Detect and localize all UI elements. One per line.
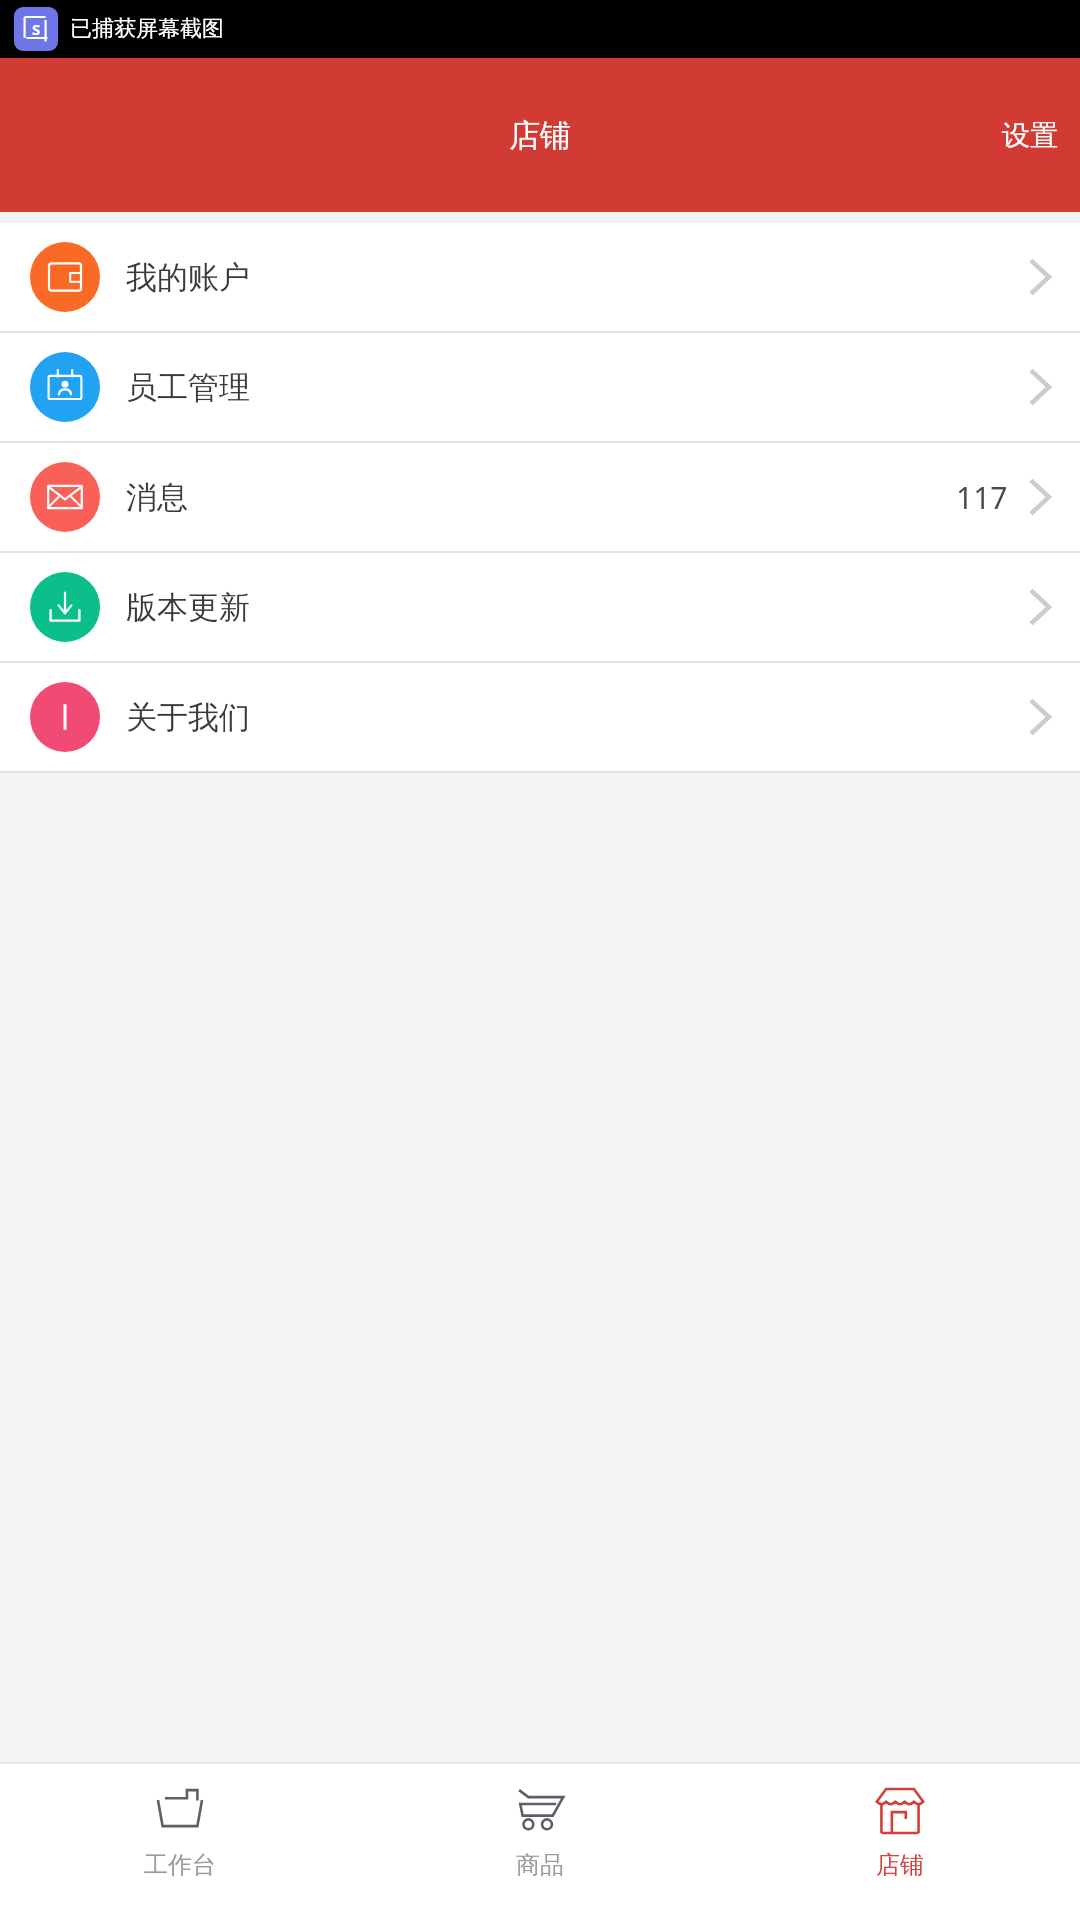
button[interactable]: 关于我们	[0, 663, 1080, 771]
staticText: 关于我们	[126, 698, 250, 737]
button[interactable]: 商品	[360, 1764, 720, 1920]
button[interactable]: 我的账户	[0, 223, 1080, 331]
staticText: S	[32, 19, 41, 39]
staticText: 已捕获屏幕截图	[70, 15, 224, 43]
staticText: 员工管理	[126, 368, 250, 407]
button[interactable]: 工作台	[0, 1764, 360, 1920]
staticText: 店铺	[876, 1850, 924, 1880]
button[interactable]: 员工管理	[0, 333, 1080, 441]
staticText: 117	[956, 477, 1008, 518]
staticText: 店铺	[509, 116, 571, 155]
button[interactable]: 设置	[980, 100, 1080, 171]
button[interactable]: 版本更新	[0, 553, 1080, 661]
button[interactable]: 店铺	[720, 1764, 1080, 1920]
button[interactable]: 消息	[0, 443, 1080, 551]
staticText: 版本更新	[126, 588, 250, 627]
staticText: 工作台	[144, 1850, 216, 1880]
staticText: 我的账户	[126, 258, 250, 297]
staticText: 设置	[1002, 118, 1058, 153]
staticText: 商品	[516, 1850, 564, 1880]
staticText: 消息	[126, 478, 188, 517]
